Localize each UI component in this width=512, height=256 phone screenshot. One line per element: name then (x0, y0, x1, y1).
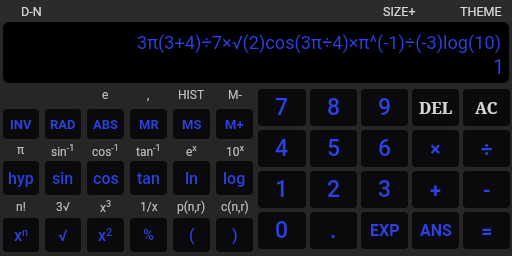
staticText: 1 (493, 55, 505, 78)
staticText: M- (228, 88, 242, 102)
staticText: x2 (98, 226, 113, 245)
staticText: ex (186, 143, 197, 158)
staticText: MS (182, 117, 202, 132)
staticText: AC (475, 97, 498, 119)
staticText: x3 (100, 199, 112, 214)
staticText: HIST (178, 88, 205, 102)
staticText: √ (58, 226, 68, 245)
staticText: e (102, 88, 109, 102)
staticText: cos-1 (92, 143, 119, 158)
staticText: THEME (460, 4, 502, 19)
staticText: M+ (225, 117, 244, 132)
staticText: MR (139, 117, 159, 132)
staticText: log (223, 169, 246, 188)
staticText: 3√ (56, 200, 70, 214)
staticText: sin-1 (51, 143, 75, 158)
staticText: , (147, 88, 150, 102)
staticText: + (430, 178, 441, 201)
staticText: tan (137, 169, 160, 188)
staticText: 3π(3+4)÷7×√(2)cos(3π÷4)×π^(-1)÷(-3)log(1… (137, 32, 501, 53)
staticText: 1 (275, 176, 289, 203)
staticText: 0 (275, 217, 289, 244)
staticText: . (330, 217, 337, 244)
staticText: 7 (275, 94, 289, 121)
staticText: 4 (275, 135, 289, 162)
staticText: 8 (327, 94, 341, 121)
staticText: × (430, 137, 441, 160)
staticText: D-N (21, 4, 42, 19)
staticText: 10x (226, 143, 244, 158)
staticText: tan-1 (136, 143, 161, 158)
staticText: 6 (378, 135, 392, 162)
staticText: RAD (50, 117, 76, 132)
staticText: cos (93, 169, 119, 188)
staticText: ANS (420, 221, 452, 240)
staticText: xn (14, 226, 29, 245)
staticText: - (483, 178, 491, 201)
staticText: p(n,r) (177, 200, 206, 214)
staticText: 1/x (140, 200, 158, 214)
staticText: = (481, 219, 493, 242)
staticText: ) (232, 226, 238, 245)
staticText: hyp (8, 169, 34, 188)
staticText: 2 (327, 176, 341, 203)
staticText: 3 (378, 176, 392, 203)
staticText: 5 (327, 135, 341, 162)
staticText: 9 (378, 94, 392, 121)
staticText: ln (185, 169, 198, 188)
staticText: π (17, 143, 25, 157)
staticText: ( (189, 226, 195, 245)
staticText: % (143, 226, 155, 244)
staticText: n! (16, 200, 26, 214)
staticText: EXP (370, 221, 400, 240)
staticText: c(n,r) (221, 200, 249, 214)
staticText: sin (52, 169, 74, 188)
staticText: INV (10, 117, 32, 132)
staticText: ABS (93, 117, 119, 132)
staticText: DEL (419, 97, 453, 119)
staticText: ÷ (481, 137, 493, 160)
staticText: SIZE+ (383, 4, 416, 19)
